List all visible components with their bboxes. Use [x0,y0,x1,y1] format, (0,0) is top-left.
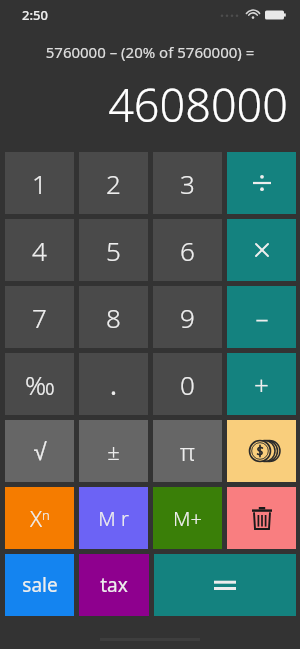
staticText: – [255,300,269,335]
button[interactable]: ‰ [5,353,74,415]
button[interactable]: Divide [227,152,296,214]
staticText: tax [100,572,128,598]
staticText: 4 [32,233,47,268]
button[interactable]: Xn [5,487,74,549]
button[interactable]: 3 [153,152,222,214]
button[interactable]: Minus [227,286,296,348]
staticText: 6 [180,233,195,268]
button[interactable]: M r [79,487,148,549]
staticText: 9 [180,300,195,335]
staticText: + [254,367,269,402]
button[interactable]: ± [79,420,148,482]
staticText: 7 [32,300,47,335]
staticText: . [110,367,117,402]
button[interactable]: Multiply [227,219,296,281]
staticText: Xn [30,503,50,533]
staticText: 0 [180,367,195,402]
staticText: 3 [180,166,195,201]
button[interactable]: 0 [153,353,222,415]
staticText: M+ [173,505,202,532]
button[interactable]: 7 [5,286,74,348]
button[interactable]: sale [5,554,74,616]
staticText: sale [22,572,58,598]
button[interactable]: Plus [227,353,296,415]
button[interactable]: 9 [153,286,222,348]
button[interactable]: √ [5,420,74,482]
button[interactable]: 1 [5,152,74,214]
staticText: ± [107,436,120,466]
button[interactable]: 5 [79,219,148,281]
staticText: 4608000 [12,74,288,135]
staticText: ‰ [25,367,55,402]
button[interactable]: Equals [154,554,296,616]
button[interactable]: M+ [153,487,222,549]
staticText: 8 [106,300,121,335]
button[interactable]: π [153,420,222,482]
button[interactable]: Clear [227,487,296,549]
button[interactable]: 6 [153,219,222,281]
staticText: 1 [32,166,47,201]
button[interactable]: 2 [79,152,148,214]
staticText: 5760000 – (20% of 5760000) = [12,42,288,62]
staticText: 2 [106,166,121,201]
button[interactable]: tax [79,554,149,616]
staticText: √ [33,438,47,465]
staticText: π [180,435,195,468]
button[interactable]: 4 [5,219,74,281]
button[interactable]: . [79,353,148,415]
staticText: M r [98,505,129,532]
staticText: 2:50 [22,6,48,24]
staticText: 5 [106,233,121,268]
button[interactable]: Currency [227,420,296,482]
button[interactable]: 8 [79,286,148,348]
